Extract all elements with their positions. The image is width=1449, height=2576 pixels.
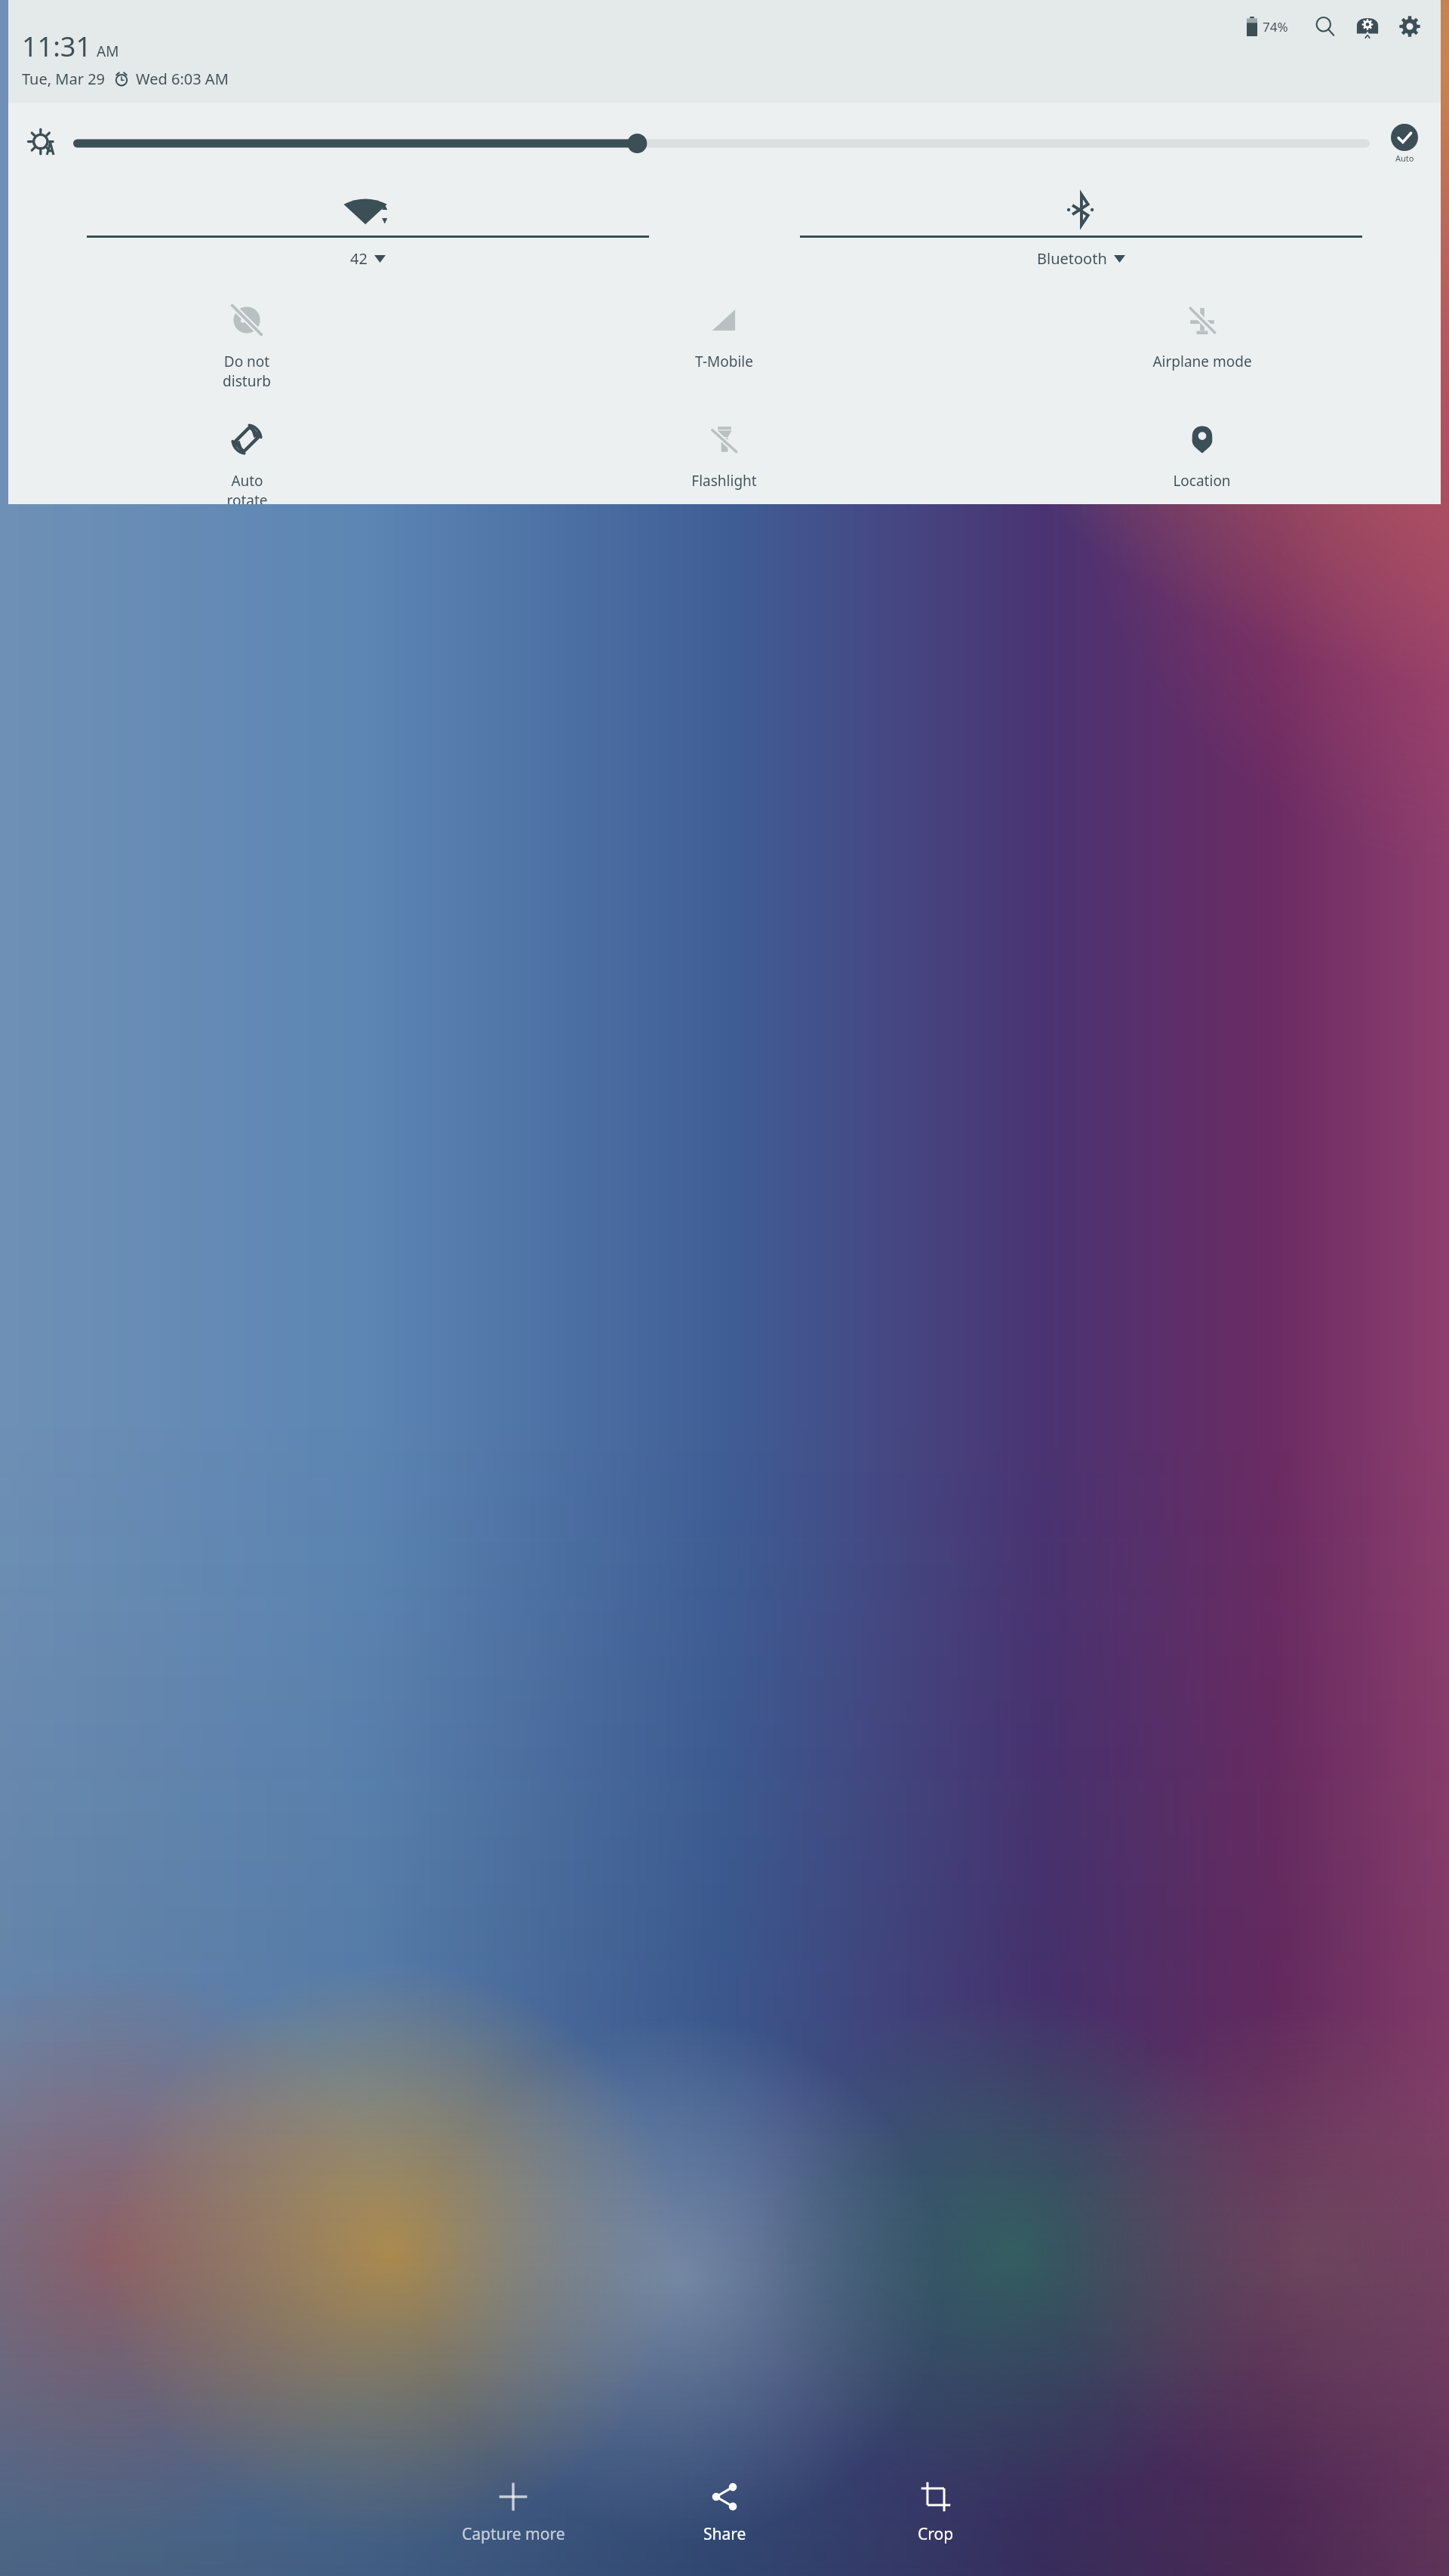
staticText: Share: [703, 2523, 746, 2545]
staticText: Capture more: [462, 2523, 565, 2545]
staticText: Bluetooth: [1037, 248, 1107, 269]
button[interactable]: Airplane mode: [963, 299, 1441, 371]
staticText: Tue, Mar 29: [22, 69, 106, 89]
button[interactable]: 42: [25, 189, 711, 269]
button[interactable]: Auto brightness: [23, 124, 63, 163]
staticText: Auto: [1395, 152, 1414, 164]
staticText: Location: [1173, 471, 1231, 491]
button[interactable]: T-Mobile: [485, 299, 963, 371]
button[interactable]: Settings: [1392, 9, 1427, 44]
staticText: AM: [97, 42, 119, 61]
button[interactable]: Share: [649, 2479, 800, 2545]
staticText: T-Mobile: [695, 352, 753, 371]
staticText: Do not disturb: [223, 352, 271, 391]
staticText: 11:31: [22, 28, 92, 65]
button[interactable]: [73, 128, 1370, 158]
button[interactable]: Auto: [1382, 124, 1427, 164]
staticText: 74%: [1263, 18, 1288, 35]
staticText: Airplane mode: [1152, 352, 1252, 371]
button[interactable]: Crop: [860, 2479, 1011, 2545]
staticText: 42: [350, 248, 368, 269]
button[interactable]: Auto rotate: [8, 418, 485, 504]
staticText: Flashlight: [691, 471, 757, 491]
button[interactable]: Capture more: [438, 2479, 589, 2545]
button[interactable]: Search: [1308, 9, 1343, 44]
button[interactable]: Edit quick settings: [1350, 9, 1385, 44]
staticText: Crop: [918, 2523, 954, 2545]
button[interactable]: Bluetooth: [738, 189, 1424, 269]
staticText: Wed 6:03 AM: [136, 69, 229, 89]
button[interactable]: Flashlight: [485, 418, 963, 491]
button[interactable]: Location: [963, 418, 1441, 491]
staticText: Auto rotate: [226, 471, 268, 504]
button[interactable]: Do not disturb: [8, 299, 485, 391]
